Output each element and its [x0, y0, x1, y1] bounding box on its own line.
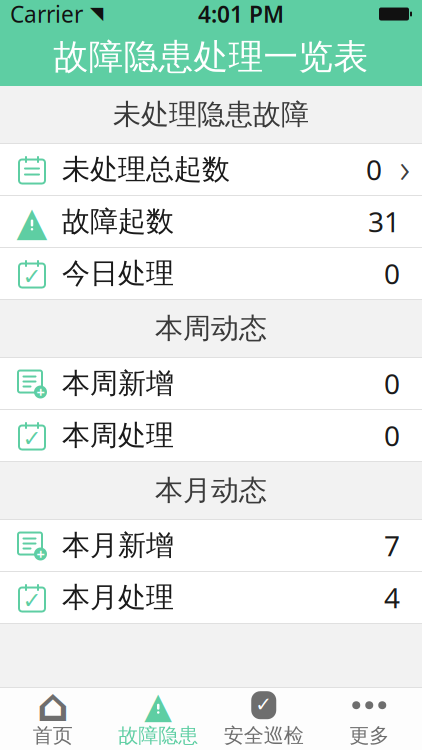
- staticText: 7: [384, 527, 400, 564]
- staticText: 未处理总起数: [62, 152, 230, 187]
- staticText: 本月处理: [62, 580, 174, 615]
- staticText: Carrier: [10, 0, 83, 29]
- staticText: ✓: [255, 693, 272, 716]
- staticText: 本周处理: [62, 418, 174, 453]
- button[interactable]: ▲: [105, 688, 211, 750]
- staticText: 故障隐患: [118, 723, 198, 748]
- staticText: ›: [399, 141, 410, 194]
- button[interactable]: ⌂: [0, 688, 105, 750]
- staticText: ⌂: [37, 679, 69, 731]
- staticText: 未处理隐患故障: [113, 97, 309, 132]
- staticText: 安全巡检: [224, 723, 304, 748]
- staticText: +: [36, 382, 44, 402]
- staticText: 本月动态: [155, 473, 267, 508]
- staticText: +: [36, 544, 44, 564]
- button[interactable]: +: [0, 520, 422, 572]
- button[interactable]: ✓: [0, 410, 422, 462]
- staticText: 0: [366, 151, 382, 188]
- staticText: 4:01 PM: [198, 0, 284, 29]
- staticText: 今日处理: [62, 256, 174, 291]
- staticText: ✓: [22, 264, 41, 289]
- staticText: ▲: [16, 199, 47, 244]
- button[interactable]: 未处理总起数: [0, 144, 422, 196]
- staticText: 0: [384, 255, 400, 292]
- staticText: ✓: [22, 426, 41, 451]
- staticText: 4: [384, 579, 400, 616]
- staticText: 本月新增: [62, 528, 174, 563]
- staticText: 0: [384, 417, 400, 454]
- staticText: 31: [368, 203, 400, 240]
- staticText: ◥: [90, 3, 103, 23]
- button[interactable]: 更多: [316, 688, 422, 750]
- staticText: 本周动态: [155, 311, 267, 346]
- button[interactable]: ▲: [0, 196, 422, 248]
- staticText: 首页: [33, 723, 73, 748]
- staticText: ✓: [22, 588, 41, 613]
- staticText: 0: [384, 365, 400, 402]
- button[interactable]: ✓: [0, 248, 422, 300]
- staticText: ▲: [144, 685, 172, 726]
- staticText: 故障隐患处理一览表: [53, 36, 368, 78]
- button[interactable]: +: [0, 358, 422, 410]
- staticText: 故障起数: [62, 204, 174, 239]
- button[interactable]: ✓: [211, 688, 316, 750]
- button[interactable]: ✓: [0, 572, 422, 624]
- staticText: 本周新增: [62, 366, 174, 401]
- staticText: 更多: [349, 723, 389, 748]
